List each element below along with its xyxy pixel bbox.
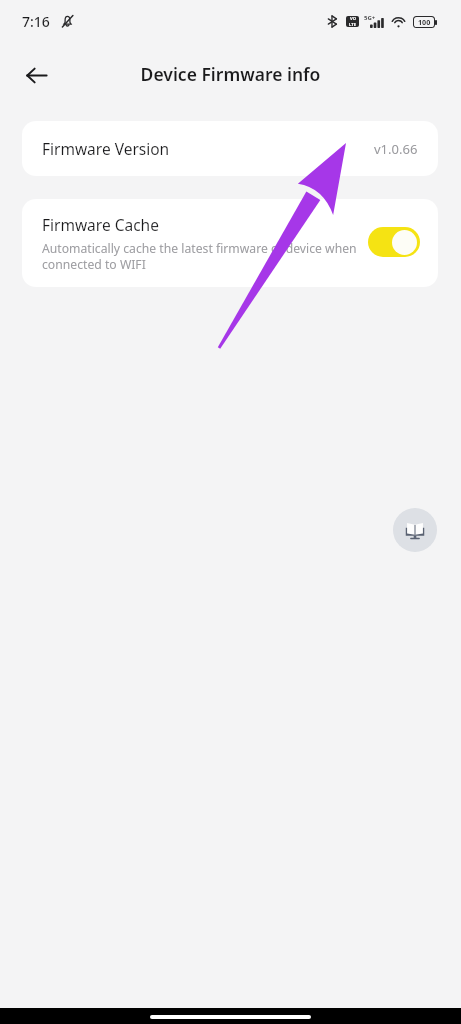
staticText: 7:16	[22, 12, 50, 31]
staticText: Device Firmware info	[0, 62, 461, 86]
staticText: 5G+	[364, 14, 376, 22]
staticText: Firmware Cache	[42, 214, 159, 235]
staticText: Firmware Version	[42, 138, 170, 159]
button[interactable]: Firmware Cache	[22, 199, 438, 287]
button[interactable]: User manual	[393, 508, 437, 552]
staticText: VO	[350, 16, 356, 22]
button[interactable]: Back	[14, 53, 58, 97]
button[interactable]: Firmware Version	[22, 121, 438, 176]
button[interactable]: Firmware cache toggle, on	[368, 227, 420, 257]
staticText: 100	[418, 17, 431, 27]
staticText: LTE	[349, 22, 357, 27]
staticText: v1.0.66	[374, 140, 418, 158]
staticText: Automatically cache the latest firmware …	[42, 240, 367, 272]
